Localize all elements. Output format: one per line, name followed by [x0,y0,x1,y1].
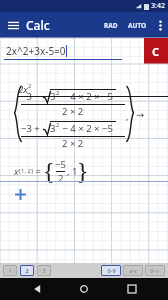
staticText: 3 [50,122,56,135]
button[interactable]: Add new expression [12,186,28,202]
staticText: −5 [55,158,66,171]
staticText: 3:42 [151,1,165,11]
staticText: 2 [25,267,29,274]
button[interactable]: Home [73,278,95,300]
staticText: 2 [56,89,60,97]
staticText: a-z [129,267,137,274]
staticText: [1, 2] [19,167,33,175]
staticText: −3 − [21,90,43,103]
staticText: 2x [18,83,28,96]
staticText: 2 [56,121,60,129]
staticText: 2x^2+3x-5=0 [6,44,66,58]
button[interactable]: Back [26,278,48,300]
staticText: } [78,156,88,186]
staticText: , 1 [67,165,78,178]
staticText: , [126,110,129,123]
staticText: 2 [58,172,64,185]
staticText: 2 [28,82,32,90]
staticText: 2 × 2 [62,137,84,150]
button[interactable]: 2 [20,265,34,276]
button[interactable]: 3 [37,265,51,276]
staticText: 3 [50,90,56,103]
staticText: − 4 × 2 × −5 [60,122,113,135]
staticText: 3 [42,267,46,274]
button[interactable]: C [144,38,168,64]
button[interactable]: Open navigation menu [0,12,26,38]
button[interactable]: Calc [26,17,50,33]
button[interactable]: 0-∞ [145,265,165,276]
staticText: 2 × 2 [62,105,84,118]
button[interactable]: AUTO [123,15,152,36]
staticText: 0-∞ [150,267,160,274]
staticText: C [152,44,160,59]
staticText: { [44,156,54,186]
staticText: 1 [8,267,12,274]
button[interactable]: a-z [123,265,143,276]
staticText: = [33,165,44,178]
staticText: −3 + [21,122,43,135]
button[interactable]: Recent apps [121,278,143,300]
staticText: 0-9 [107,267,116,274]
staticText: x [14,165,19,178]
button[interactable]: More options [152,12,168,38]
staticText: → [136,109,144,120]
button[interactable]: 0-9 [101,265,121,276]
button[interactable]: 1 [3,265,17,276]
button[interactable]: RAD [99,15,123,36]
staticText: − 4 × 2 × −5 [60,90,113,103]
